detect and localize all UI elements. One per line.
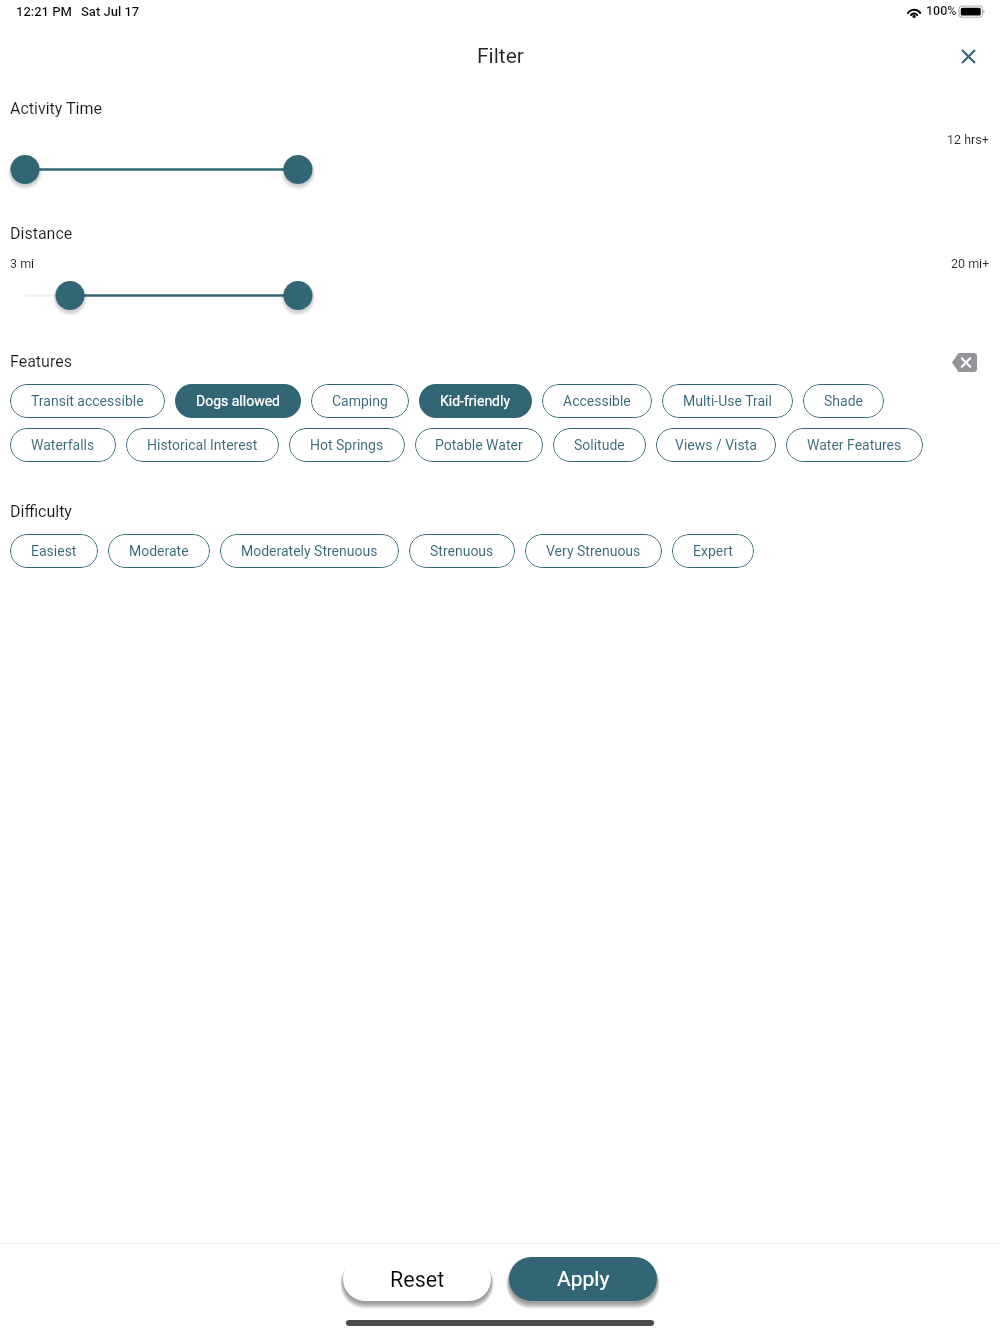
staticText: Transit accessible	[31, 393, 144, 409]
staticText: Moderate	[129, 543, 189, 559]
staticText: Accessible	[563, 393, 631, 409]
button[interactable]: Multi-Use Trail	[662, 384, 793, 418]
button[interactable]: Strenuous	[409, 534, 515, 568]
button[interactable]: Easiest	[10, 534, 98, 568]
staticText: Strenuous	[430, 543, 494, 559]
staticText: Waterfalls	[31, 437, 95, 453]
button[interactable]: Accessible	[542, 384, 652, 418]
button[interactable]: Dogs allowed	[175, 384, 301, 418]
button[interactable]: Expert	[672, 534, 754, 568]
staticText: 12:21 PM	[16, 4, 72, 19]
staticText: Expert	[693, 543, 733, 559]
button[interactable]: Very Strenuous	[525, 534, 662, 568]
button[interactable]: Camping	[311, 384, 409, 418]
button[interactable]: Hot Springs	[289, 428, 405, 462]
staticText: Apply	[557, 1267, 610, 1292]
staticText: 20 mi+	[951, 256, 990, 271]
button[interactable]: Moderate	[108, 534, 210, 568]
staticText: Distance	[10, 224, 73, 243]
button[interactable]: Water Features	[786, 428, 923, 462]
button[interactable]: Apply	[509, 1257, 657, 1301]
staticText: Very Strenuous	[546, 543, 641, 559]
staticText: 12 hrs+	[947, 132, 989, 147]
button[interactable]: Reset	[343, 1257, 491, 1301]
button[interactable]: Moderately Strenuous	[220, 534, 399, 568]
staticText: Kid-friendly	[440, 393, 511, 409]
staticText: 100%	[926, 3, 957, 18]
staticText: Reset	[390, 1267, 445, 1292]
staticText: Views / Vista	[675, 437, 757, 453]
staticText: Filter	[477, 44, 524, 69]
staticText: Moderately Strenuous	[241, 543, 378, 559]
button[interactable]: Kid-friendly	[419, 384, 532, 418]
staticText: Dogs allowed	[196, 393, 280, 409]
button[interactable]: Transit accessible	[10, 384, 165, 418]
staticText: Historical Interest	[147, 437, 258, 453]
button[interactable]: Potable Water	[415, 428, 543, 462]
button[interactable]: Clear selected features	[946, 348, 982, 376]
staticText: Hot Springs	[310, 437, 384, 453]
staticText: Solitude	[574, 437, 625, 453]
staticText: Water Features	[807, 437, 902, 453]
staticText: Features	[10, 352, 72, 371]
button[interactable]: Waterfalls	[10, 428, 116, 462]
button[interactable]: Solitude	[553, 428, 646, 462]
staticText: 3 mi	[10, 256, 35, 271]
staticText: Potable Water	[435, 437, 523, 453]
button[interactable]: Close	[950, 38, 987, 75]
staticText: Shade	[824, 393, 863, 409]
staticText: Sat Jul 17	[81, 4, 140, 19]
button[interactable]: Shade	[803, 384, 884, 418]
staticText: Easiest	[31, 543, 77, 559]
staticText: Activity Time	[10, 99, 102, 118]
button[interactable]: Historical Interest	[126, 428, 279, 462]
staticText: Multi-Use Trail	[683, 393, 772, 409]
staticText: Difficulty	[10, 502, 72, 521]
staticText: Camping	[332, 393, 388, 409]
button[interactable]: Views / Vista	[656, 428, 776, 462]
